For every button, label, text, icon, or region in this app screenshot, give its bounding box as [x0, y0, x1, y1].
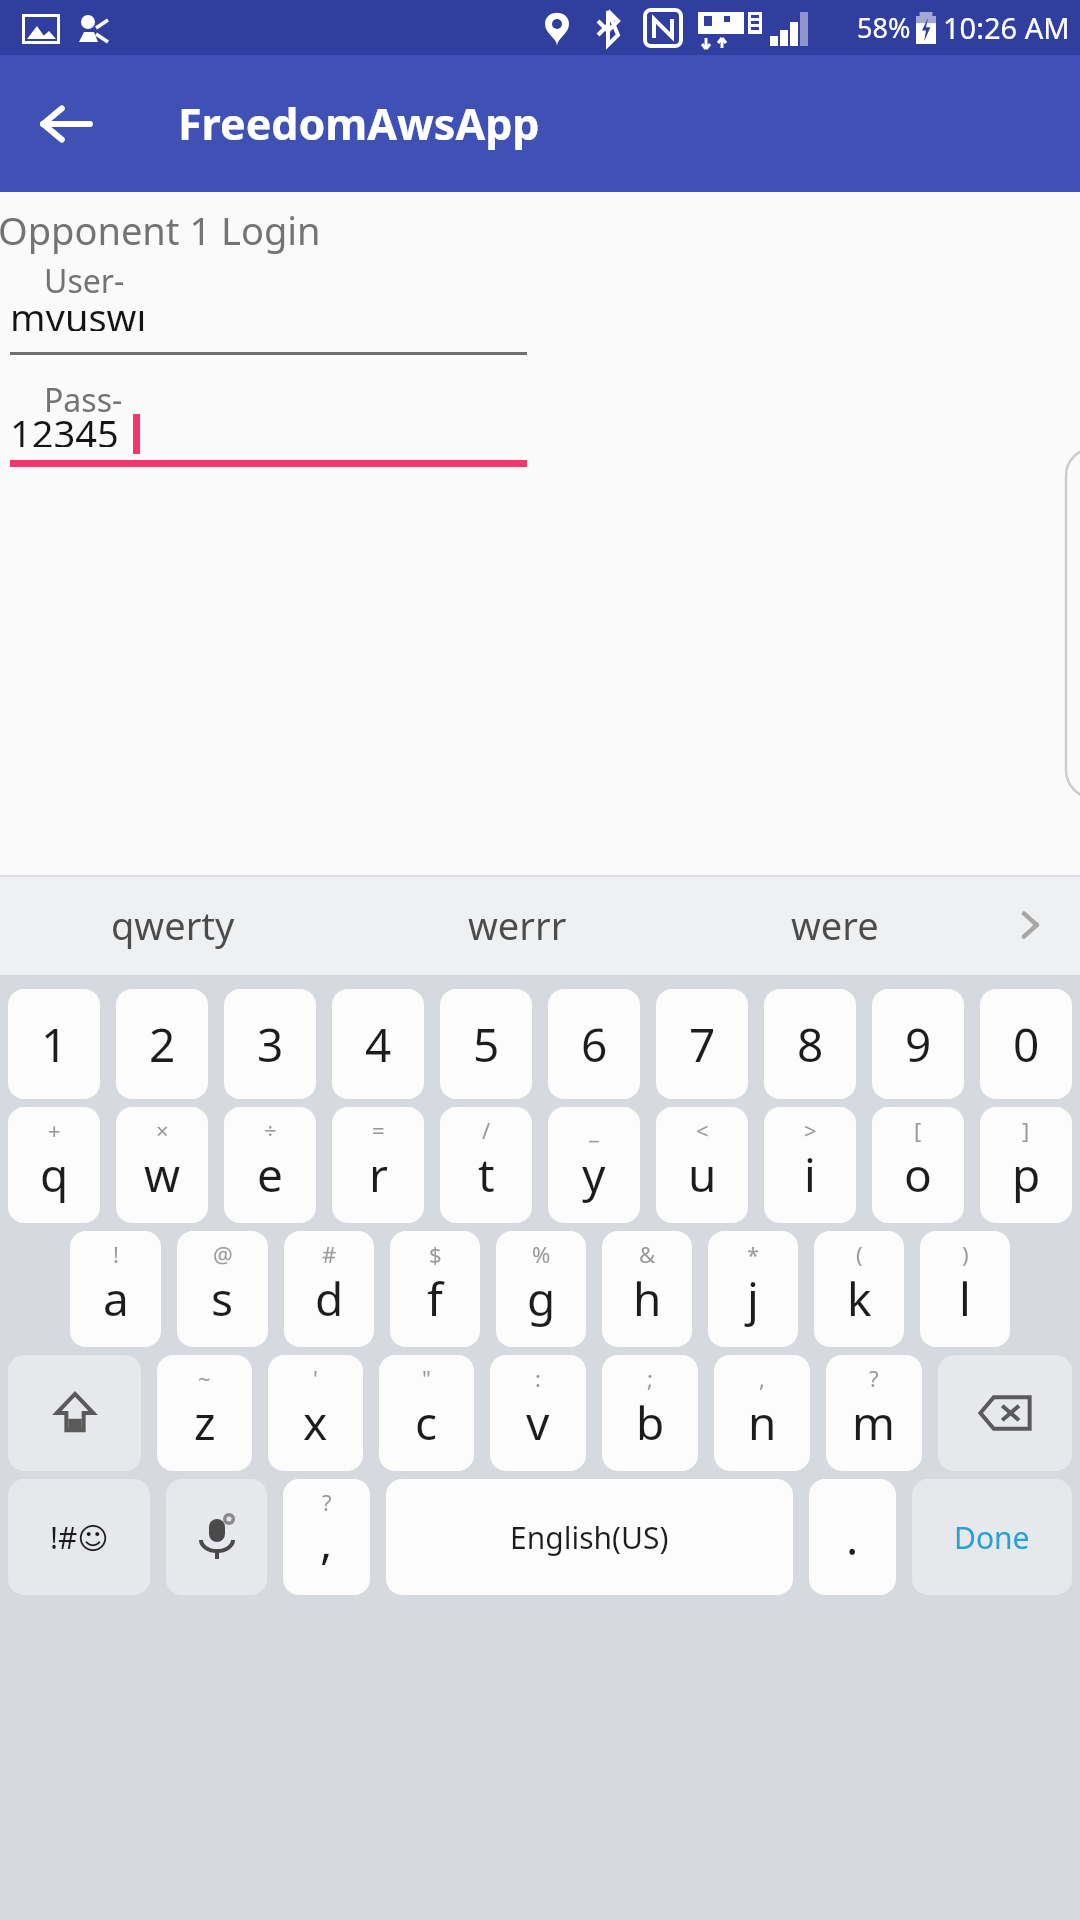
staticText: English(US) [510, 1517, 669, 1558]
button[interactable]: ÷ [224, 1107, 316, 1223]
staticText: # [322, 1239, 337, 1269]
staticText: 10:26 AM [943, 8, 1070, 47]
staticText: ] [1022, 1115, 1030, 1145]
button[interactable]: $ [390, 1231, 480, 1347]
staticText: = [372, 1115, 385, 1145]
button[interactable]: qwerty [0, 875, 345, 975]
button[interactable]: & [602, 1231, 692, 1347]
staticText: ) [962, 1239, 969, 1269]
button[interactable]: ? [283, 1479, 370, 1595]
staticText: > [804, 1115, 817, 1145]
staticText: r [369, 1143, 388, 1206]
button[interactable]: Backspace [938, 1355, 1072, 1471]
button[interactable]: ' [268, 1355, 363, 1471]
staticText: p [1012, 1143, 1041, 1206]
button[interactable]: myuswi [10, 308, 525, 348]
button[interactable]: " [379, 1355, 474, 1471]
button[interactable]: 9 [872, 989, 964, 1099]
button[interactable]: # [284, 1231, 374, 1347]
button[interactable]: were [690, 875, 980, 975]
staticText: ÷ [264, 1115, 277, 1145]
staticText: 1 [41, 1013, 68, 1076]
staticText: @ [213, 1239, 233, 1269]
button[interactable]: [ [872, 1107, 964, 1223]
staticText: _ [589, 1115, 599, 1145]
button[interactable]: ( [814, 1231, 904, 1347]
button[interactable]: 3 [224, 989, 316, 1099]
button[interactable]: : [490, 1355, 586, 1471]
button[interactable]: ! [70, 1231, 161, 1347]
button[interactable]: / [440, 1107, 532, 1223]
button[interactable]: 6 [548, 989, 640, 1099]
staticText: × [156, 1115, 169, 1145]
staticText: s [211, 1267, 234, 1330]
staticText: n [748, 1391, 777, 1454]
staticText: c [415, 1391, 438, 1454]
staticText: o [904, 1143, 932, 1206]
staticText: 5 [473, 1013, 500, 1076]
button[interactable]: ? [826, 1355, 922, 1471]
button[interactable]: ~ [157, 1355, 252, 1471]
button[interactable]: More suggestions [980, 875, 1080, 975]
button[interactable]: 2 [116, 989, 208, 1099]
staticText: m [852, 1391, 896, 1454]
staticText: !#☺ [50, 1517, 109, 1558]
staticText: ! [113, 1239, 119, 1269]
button[interactable]: Done [912, 1479, 1072, 1595]
staticText: qwerty [111, 899, 235, 951]
staticText: / [482, 1115, 491, 1145]
staticText: 8 [797, 1013, 824, 1076]
staticText: 4 [365, 1013, 392, 1076]
staticText: ' [313, 1363, 318, 1393]
staticText: User- [44, 259, 125, 303]
button[interactable]: . [809, 1479, 896, 1595]
staticText: + [48, 1115, 61, 1145]
button[interactable]: 5 [440, 989, 532, 1099]
button[interactable]: 8 [764, 989, 856, 1099]
button[interactable]: 12345 [10, 424, 525, 464]
button[interactable]: + [8, 1107, 100, 1223]
staticText: * [747, 1239, 760, 1269]
button[interactable]: * [708, 1231, 798, 1347]
button[interactable]: 4 [332, 989, 424, 1099]
staticText: j [747, 1267, 759, 1330]
button[interactable]: !#☺ [8, 1479, 150, 1595]
button[interactable]: ] [980, 1107, 1072, 1223]
staticText: ( [856, 1239, 863, 1269]
button[interactable]: > [764, 1107, 856, 1223]
button[interactable]: % [496, 1231, 586, 1347]
button[interactable]: ; [602, 1355, 698, 1471]
button[interactable]: _ [548, 1107, 640, 1223]
staticText: < [696, 1115, 709, 1145]
staticText: were [791, 899, 879, 951]
staticText: myuswi [10, 308, 147, 331]
button[interactable]: @ [177, 1231, 268, 1347]
button[interactable]: 7 [656, 989, 748, 1099]
button[interactable]: Shift [8, 1355, 141, 1471]
button[interactable]: , [714, 1355, 810, 1471]
button[interactable]: < [656, 1107, 748, 1223]
staticText: FreedomAwsApp [178, 94, 540, 153]
staticText: d [315, 1267, 344, 1330]
button[interactable]: = [332, 1107, 424, 1223]
button[interactable]: English(US) [386, 1479, 793, 1595]
staticText: w [144, 1143, 181, 1206]
button[interactable]: ) [920, 1231, 1010, 1347]
staticText: Opponent 1 Login [0, 204, 321, 256]
staticText: b [636, 1391, 665, 1454]
staticText: $ [429, 1239, 442, 1269]
staticText: t [478, 1143, 495, 1206]
staticText: Done [954, 1517, 1030, 1558]
staticText: h [633, 1267, 662, 1330]
staticText: [ [914, 1115, 922, 1145]
button[interactable]: 1 [8, 989, 100, 1099]
staticText: 12345 [10, 407, 119, 447]
button[interactable]: Voice input [166, 1479, 267, 1595]
button[interactable]: 0 [980, 989, 1072, 1099]
staticText: x [303, 1391, 328, 1454]
staticText: z [194, 1391, 216, 1454]
button[interactable]: Back [30, 88, 102, 160]
button[interactable]: × [116, 1107, 208, 1223]
button[interactable]: werrr [345, 875, 690, 975]
staticText: ? [322, 1487, 332, 1517]
